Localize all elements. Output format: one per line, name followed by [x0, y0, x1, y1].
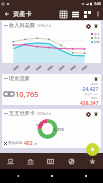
- staticText: -5,295: [52, 127, 65, 133]
- button[interactable]: Settings: [84, 110, 92, 118]
- button[interactable]: Back: [0, 169, 35, 183]
- staticText: 結餘: [94, 40, 100, 44]
- button[interactable]: Favorites: [82, 153, 103, 169]
- button[interactable]: Home: [35, 169, 69, 183]
- button[interactable]: Add: [86, 143, 99, 156]
- staticText: 總支出: [91, 83, 99, 86]
- button[interactable]: Grid view: [57, 8, 69, 20]
- staticText: 支出: [94, 36, 100, 40]
- button[interactable]: Recent apps: [69, 169, 103, 183]
- staticText: 收入與花費: [9, 22, 35, 29]
- staticText: 目前: [36, 123, 42, 126]
- staticText: 10,765: [15, 89, 39, 99]
- button[interactable]: Delete: [92, 22, 100, 30]
- staticText: 總收入: [91, 97, 99, 100]
- staticText: 收入: [94, 32, 100, 36]
- staticText: 元: [34, 142, 37, 146]
- button[interactable]: Back: [0, 7, 13, 20]
- staticText: 3:44: [94, 1, 101, 6]
- button[interactable]: Settings: [84, 22, 92, 30]
- button[interactable]: Delete: [92, 110, 100, 118]
- button[interactable]: Bank: [20, 153, 40, 169]
- staticText: 438,347: [80, 100, 99, 105]
- staticText: 402: [24, 140, 33, 147]
- button[interactable]: Layout: [81, 8, 93, 20]
- button[interactable]: Delete: [92, 75, 100, 83]
- staticText: 2018年1月: [37, 112, 52, 116]
- staticText: 營金結為: [8, 141, 23, 146]
- staticText: 五五世界卡: [9, 110, 35, 117]
- button[interactable]: Wallet: [0, 153, 20, 169]
- staticText: 較上月 -3.5%: [85, 93, 99, 96]
- button[interactable]: Globe: [61, 153, 82, 169]
- staticText: 現金流量: [9, 75, 30, 82]
- staticText: -24,427: [81, 86, 99, 93]
- staticText: 資產卡: [13, 10, 32, 18]
- button[interactable]: List view: [69, 8, 81, 20]
- button[interactable]: Card: [40, 153, 61, 169]
- staticText: 24.8%: [43, 123, 52, 127]
- staticText: 2018年1月: [37, 24, 52, 28]
- button[interactable]: More options: [93, 9, 103, 19]
